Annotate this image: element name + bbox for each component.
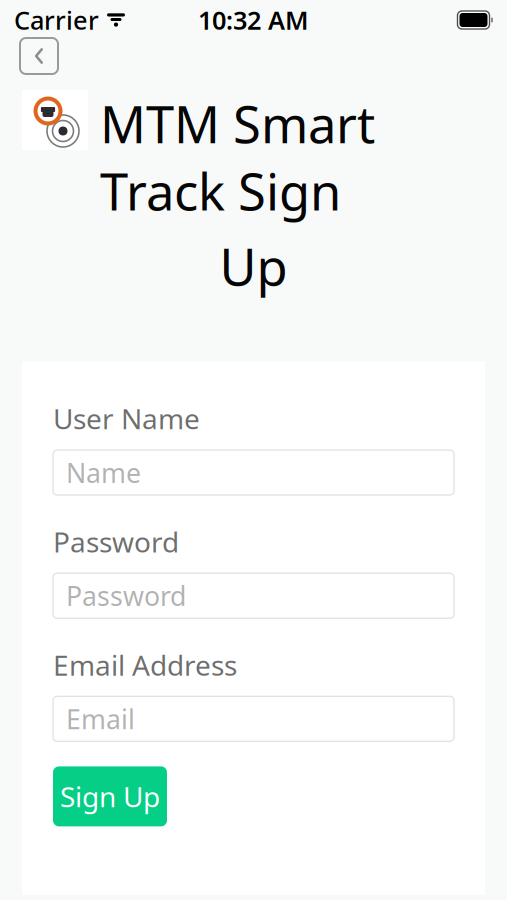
staticText: MTM Smart Track Sign	[100, 90, 375, 225]
staticText: User Name	[53, 400, 200, 437]
button[interactable]: Back	[20, 38, 58, 74]
staticText: Sign Up	[60, 778, 160, 815]
staticText: Password	[66, 578, 186, 613]
staticText: Email Address	[53, 646, 237, 683]
button[interactable]: Email	[53, 696, 454, 741]
button[interactable]: Sign Up	[53, 766, 167, 826]
button[interactable]: Name	[53, 450, 454, 495]
staticText: Carrier	[14, 3, 99, 37]
staticText: Name	[66, 455, 141, 490]
button[interactable]: Password	[53, 573, 454, 618]
staticText: Email	[66, 701, 135, 737]
staticText: 10:32 AM	[198, 3, 309, 37]
staticText: Password	[53, 523, 179, 560]
staticText: Up	[219, 233, 287, 300]
